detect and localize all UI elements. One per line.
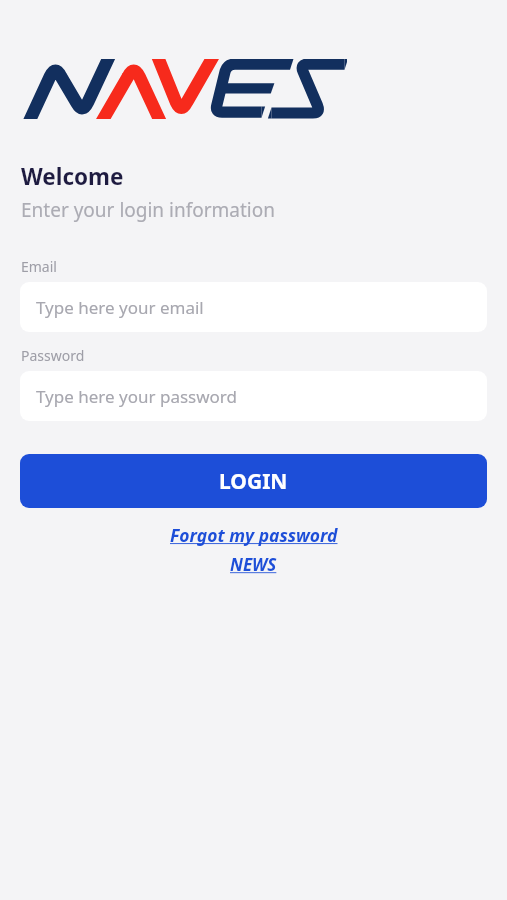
button[interactable]: Type here your password bbox=[20, 371, 487, 421]
staticText: Type here your password bbox=[36, 385, 237, 408]
staticText: Email bbox=[21, 257, 57, 276]
staticText: LOGIN bbox=[219, 467, 288, 496]
staticText: Type here your email bbox=[36, 296, 204, 319]
button[interactable]: LOGIN bbox=[20, 454, 487, 508]
staticText: Welcome bbox=[21, 161, 124, 192]
staticText: Password bbox=[21, 346, 85, 365]
button[interactable]: Type here your email bbox=[20, 282, 487, 332]
button[interactable]: NEWS bbox=[230, 553, 277, 576]
staticText: Enter your login information bbox=[21, 197, 275, 223]
button[interactable]: Forgot my password bbox=[170, 523, 338, 547]
